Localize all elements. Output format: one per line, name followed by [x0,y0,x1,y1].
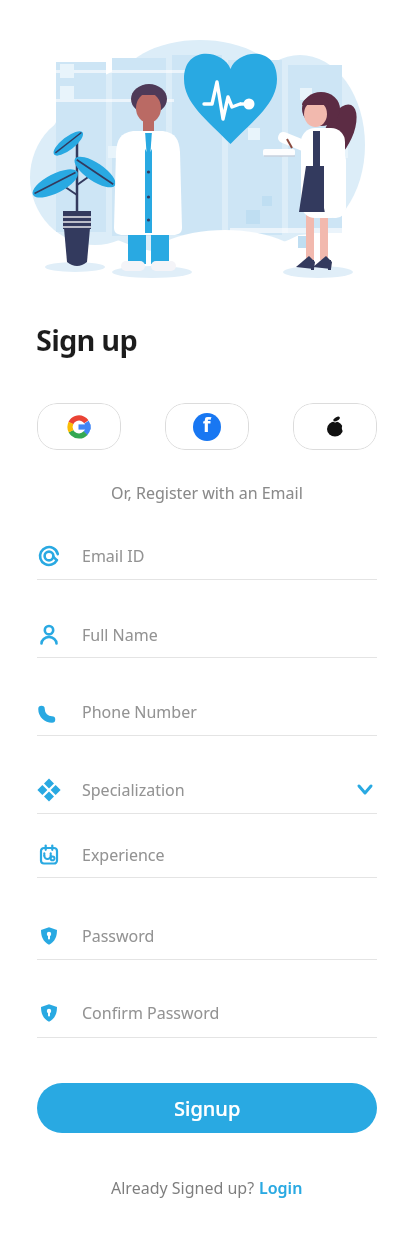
staticText: Experience [82,844,165,866]
staticText: Full Name [82,624,158,646]
staticText: Specialization [82,779,185,801]
staticText: Phone Number [82,701,197,723]
button[interactable]: Confirm Password [0,987,414,1038]
button[interactable]: f [165,403,249,450]
staticText: Or, Register with an Email [111,482,303,504]
button[interactable]: Full Name [0,609,414,658]
staticText: f [203,413,211,438]
button[interactable]: Signup [37,1083,377,1133]
button[interactable]: Specialization [0,764,414,814]
staticText: Email ID [82,545,145,567]
button[interactable] [37,403,121,450]
button[interactable]: Experience [0,829,414,878]
staticText: Sign up [36,320,137,359]
button[interactable]: Phone Number [0,686,414,736]
staticText: Confirm Password [82,1002,220,1024]
button[interactable] [293,403,377,450]
button[interactable]: Login [259,1177,303,1199]
button[interactable]: Email ID [0,530,414,580]
staticText: Signup [174,1095,241,1122]
button[interactable]: Password [0,910,414,960]
staticText: Already Signed up? [111,1177,259,1199]
staticText: Password [82,925,155,947]
